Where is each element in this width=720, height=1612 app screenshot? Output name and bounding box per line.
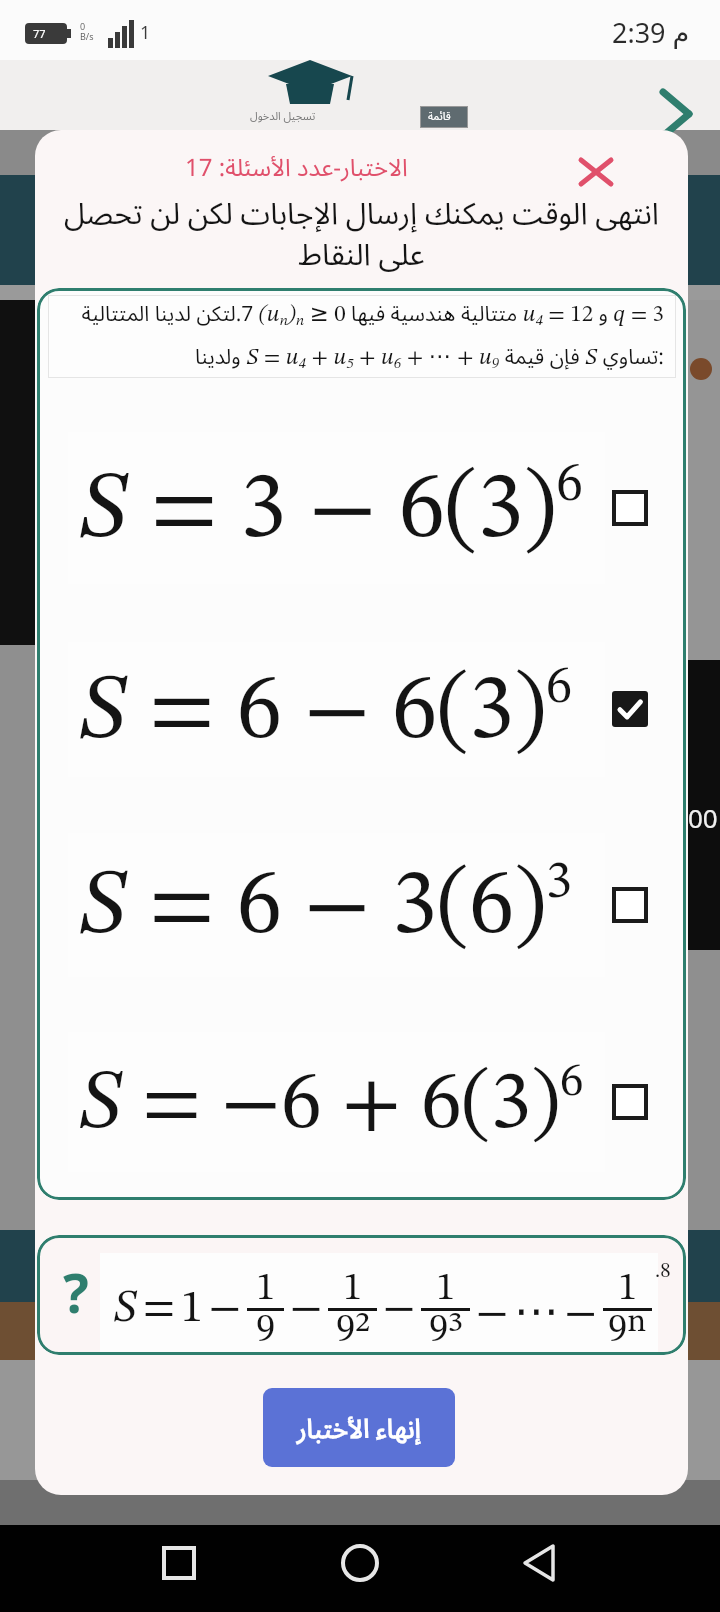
staticText: 1 bbox=[343, 1269, 363, 1308]
staticText: 1 bbox=[140, 20, 151, 45]
staticText: S = −6 + 6(3)6 bbox=[78, 1058, 584, 1146]
staticText: الاختبار-عدد الأسئلة: 17 bbox=[185, 150, 408, 183]
button[interactable]: S = 6 − 3(6)3 bbox=[68, 833, 605, 977]
button[interactable] bbox=[519, 1544, 559, 1582]
staticText: − bbox=[377, 1287, 421, 1332]
staticText: انتهى الوقت يمكنك إرسال الإجابات لكن لن … bbox=[35, 192, 688, 274]
button[interactable] bbox=[612, 1084, 648, 1120]
staticText: قائمة bbox=[428, 108, 451, 123]
button[interactable] bbox=[341, 1544, 379, 1582]
staticText: S = 1 − bbox=[113, 1287, 247, 1332]
button[interactable] bbox=[612, 691, 648, 727]
staticText: − bbox=[284, 1287, 328, 1332]
button[interactable] bbox=[575, 154, 617, 190]
button[interactable]: إنهاء الأختبار bbox=[263, 1388, 455, 1467]
button[interactable]: S = 3 − 6(3)6 bbox=[68, 432, 605, 584]
staticText: ? bbox=[63, 1255, 89, 1329]
staticText: م 2:39 bbox=[612, 14, 690, 51]
staticText: S = 6 − 3(6)3 bbox=[78, 856, 573, 954]
staticText: 1 bbox=[256, 1269, 276, 1308]
button[interactable]: S = 6 − 6(3)6 bbox=[68, 642, 605, 777]
staticText: 00 bbox=[688, 800, 718, 835]
staticText: 1 bbox=[436, 1269, 456, 1308]
staticText: 9ⁿ bbox=[608, 1311, 647, 1350]
staticText: 1 bbox=[618, 1269, 638, 1308]
staticText: تسجيل الدخول bbox=[250, 108, 316, 123]
button[interactable] bbox=[612, 887, 648, 923]
staticText: 9² bbox=[336, 1311, 370, 1350]
staticText: − ⋯ − bbox=[470, 1284, 603, 1336]
button[interactable] bbox=[612, 490, 648, 526]
button[interactable] bbox=[162, 1546, 196, 1580]
staticText: S = 3 − 6(3)6 bbox=[78, 458, 583, 558]
staticText: S = 6 − 6(3)6 bbox=[78, 661, 573, 759]
staticText: 77 bbox=[33, 26, 46, 41]
staticText: ‏7.لتكن لدينا المتتالية (un)n ≥ 0 متتالي… bbox=[48, 299, 664, 371]
staticText: .8 bbox=[655, 1261, 671, 1282]
button[interactable]: S = −6 + 6(3)6 bbox=[68, 1032, 605, 1172]
staticText: 0 B/s bbox=[80, 20, 94, 42]
staticText: إنهاء الأختبار bbox=[297, 1410, 421, 1445]
staticText: 9 bbox=[256, 1311, 276, 1350]
staticText: 9³ bbox=[429, 1311, 463, 1350]
